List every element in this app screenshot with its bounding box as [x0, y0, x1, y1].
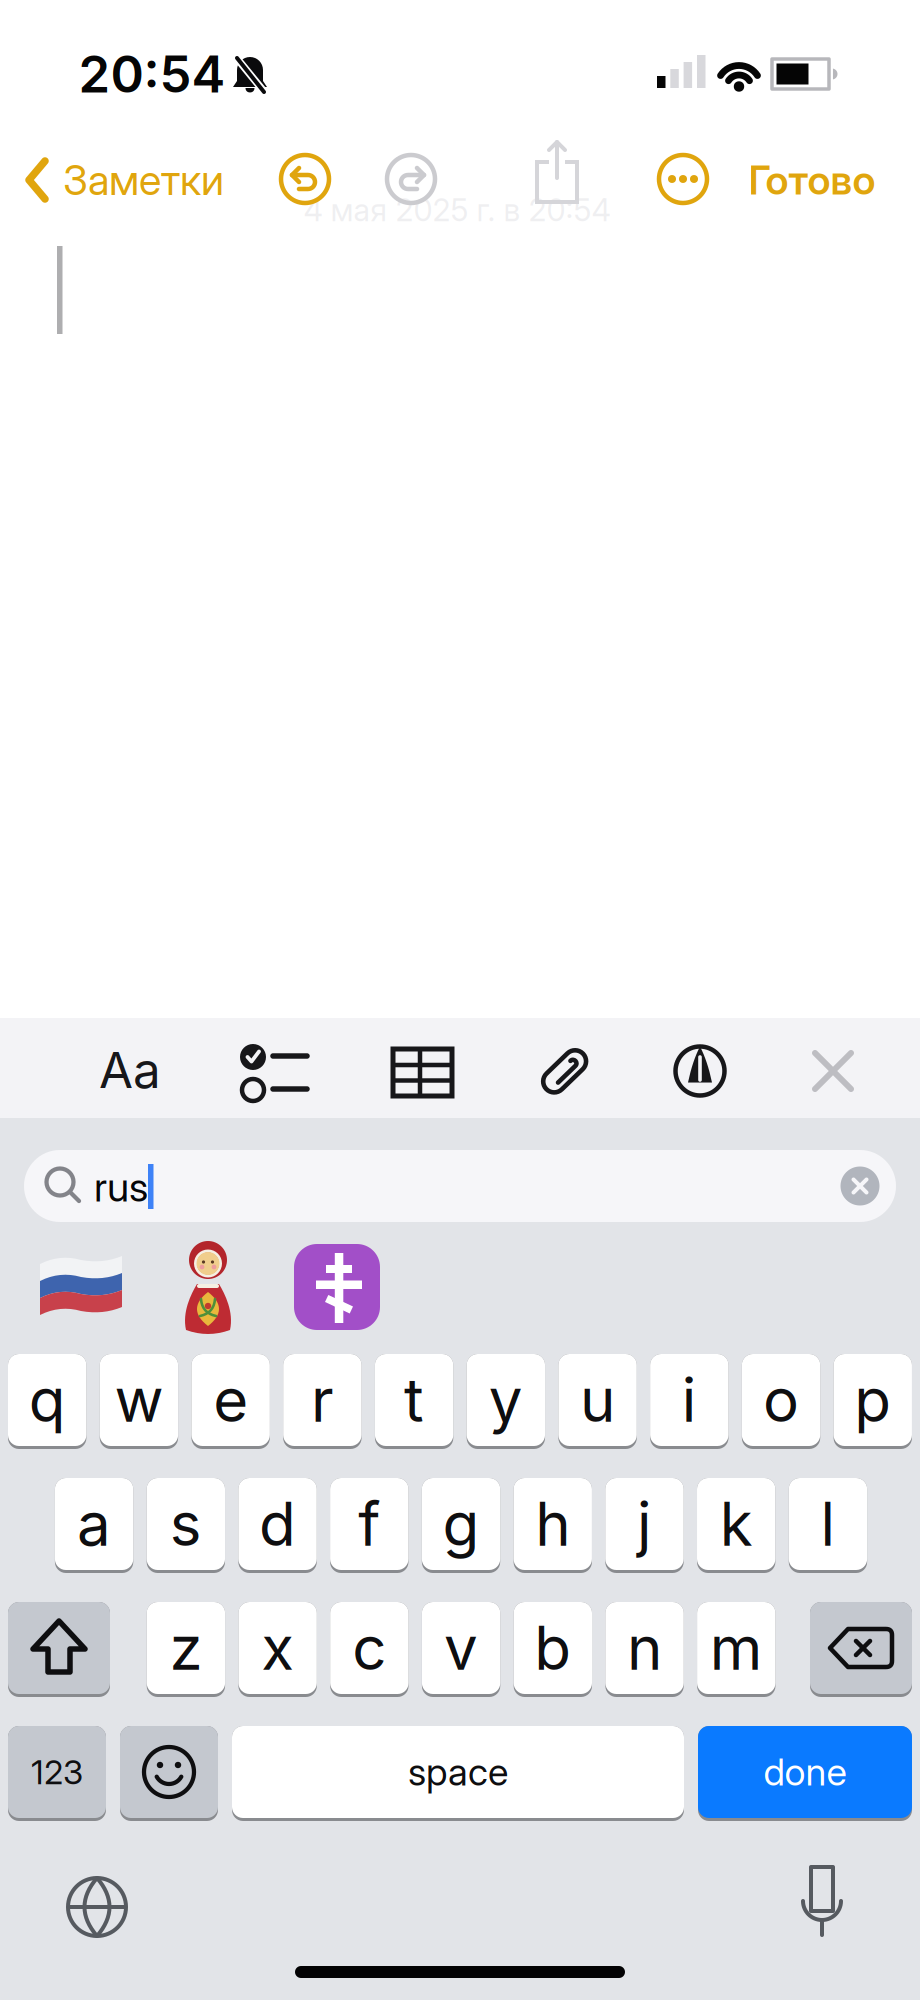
staticText: d [259, 1489, 296, 1559]
button[interactable]: More [653, 149, 713, 209]
staticText: p [854, 1365, 891, 1435]
button[interactable]: Delete [810, 1602, 912, 1697]
button[interactable]: Dismiss keyboard toolbar [788, 1035, 878, 1107]
staticText: e [213, 1365, 248, 1435]
button[interactable]: l [789, 1478, 867, 1573]
button[interactable]: y [467, 1354, 545, 1449]
staticText: Aa [99, 1041, 161, 1099]
button[interactable]: Flag of Russia emoji [35, 1246, 127, 1322]
staticText: s [170, 1489, 202, 1559]
button[interactable]: Attach [520, 1035, 610, 1107]
button[interactable]: k [697, 1478, 775, 1573]
staticText: Заметки [63, 156, 224, 204]
staticText: l [820, 1489, 835, 1559]
staticText: h [535, 1489, 570, 1559]
button[interactable]: 123 [8, 1726, 106, 1821]
staticText: 123 [31, 1752, 83, 1792]
button[interactable]: n [605, 1602, 684, 1697]
button[interactable]: h [514, 1478, 592, 1573]
button[interactable]: i [650, 1354, 728, 1449]
staticText: done [763, 1750, 846, 1794]
button[interactable]: p [834, 1354, 912, 1449]
staticText: j [637, 1489, 652, 1559]
staticText: space [408, 1750, 508, 1794]
button[interactable]: c [330, 1602, 409, 1697]
button[interactable]: Redo [381, 149, 441, 209]
staticText: g [442, 1489, 479, 1559]
button[interactable]: u [558, 1354, 637, 1449]
button[interactable]: Emoji [120, 1726, 218, 1821]
button[interactable]: a [55, 1478, 133, 1573]
staticText: a [77, 1489, 111, 1559]
button[interactable]: space [232, 1726, 684, 1821]
button[interactable]: Next keyboard [62, 1872, 132, 1942]
button[interactable]: Nesting dolls emoji [176, 1236, 240, 1336]
button[interactable]: rus [24, 1150, 896, 1222]
staticText: y [489, 1365, 523, 1435]
staticText: rus [94, 1163, 148, 1211]
button[interactable]: d [238, 1478, 317, 1573]
button[interactable]: r [283, 1354, 362, 1449]
button[interactable]: z [147, 1602, 225, 1697]
button[interactable]: Markup [655, 1036, 745, 1108]
button[interactable]: Clear search [838, 1164, 882, 1208]
staticText: b [534, 1613, 571, 1683]
button[interactable]: m [697, 1602, 775, 1697]
button[interactable]: Table [377, 1037, 467, 1109]
button[interactable]: x [238, 1602, 317, 1697]
staticText: q [29, 1365, 66, 1435]
button[interactable]: Orthodox cross emoji [292, 1242, 382, 1332]
staticText: u [580, 1365, 615, 1435]
button[interactable]: q [8, 1354, 86, 1449]
button[interactable]: Заметки [24, 152, 284, 208]
button[interactable]: o [742, 1354, 820, 1449]
staticText: c [352, 1613, 386, 1683]
button[interactable]: Dictation [787, 1861, 857, 1945]
button[interactable]: Format [82, 1030, 178, 1110]
staticText: r [311, 1365, 334, 1435]
staticText: m [710, 1613, 763, 1683]
button[interactable]: Готово [748, 156, 875, 204]
button[interactable]: Checklist [231, 1036, 321, 1108]
staticText: Готово [748, 156, 875, 204]
button[interactable]: w [100, 1354, 178, 1449]
button[interactable]: s [147, 1478, 225, 1573]
staticText: v [444, 1613, 478, 1683]
staticText: n [627, 1613, 662, 1683]
button[interactable]: g [422, 1478, 500, 1573]
staticText: f [358, 1489, 380, 1559]
button[interactable]: f [330, 1478, 408, 1573]
button[interactable]: Share [525, 136, 589, 208]
staticText: x [261, 1613, 294, 1683]
staticText: z [169, 1613, 202, 1683]
button[interactable]: v [422, 1602, 500, 1697]
staticText: w [114, 1365, 163, 1435]
button[interactable]: b [514, 1602, 592, 1697]
staticText: o [763, 1365, 799, 1435]
button[interactable]: done [698, 1726, 912, 1821]
staticText: 20:54 [78, 44, 225, 104]
staticText: t [404, 1365, 424, 1435]
button[interactable]: e [191, 1354, 270, 1449]
button[interactable]: Undo [275, 149, 335, 209]
button[interactable]: j [605, 1478, 684, 1573]
staticText: i [682, 1365, 697, 1435]
button[interactable]: Shift [8, 1602, 110, 1697]
staticText: 4 мая 2025 г. в 20:54 [303, 192, 610, 228]
staticText: k [720, 1489, 753, 1559]
button[interactable]: t [375, 1354, 453, 1449]
